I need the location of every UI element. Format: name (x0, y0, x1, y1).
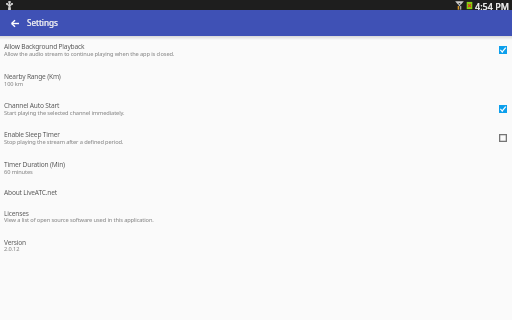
staticText: Allow Background Playback (4, 42, 85, 51)
staticText: 60 minutes (4, 168, 33, 176)
button[interactable]: Timer Duration (Min) (0, 155, 512, 183)
button[interactable]: Checked (495, 101, 511, 117)
button[interactable]: Back (7, 16, 22, 31)
staticText: Nearby Range (Km) (4, 72, 61, 81)
staticText: 2.0.12 (4, 245, 20, 253)
button[interactable]: Nearby Range (Km) (0, 67, 512, 97)
staticText: 100 km (4, 80, 23, 88)
button[interactable]: Unchecked (495, 130, 511, 146)
staticText: Version (4, 238, 26, 247)
staticText: Start playing the selected channel immed… (4, 109, 125, 117)
staticText: 4:54 PM (475, 0, 509, 10)
button[interactable]: Checked (495, 42, 511, 58)
staticText: Licenses (4, 209, 29, 218)
button[interactable]: About LiveATC.net (0, 183, 512, 205)
staticText: Stop playing the stream after a defined … (4, 138, 124, 146)
staticText: View a list of open source software used… (4, 216, 154, 224)
button[interactable]: Channel Auto Start (0, 96, 512, 125)
staticText: Channel Auto Start (4, 101, 60, 110)
staticText: Settings (27, 17, 58, 28)
staticText: About LiveATC.net (4, 188, 57, 197)
button[interactable]: Licenses (0, 204, 512, 233)
button[interactable]: Enable Sleep Timer (0, 125, 512, 154)
staticText: Timer Duration (Min) (4, 160, 65, 169)
staticText: Allow the audio stream to continue playi… (4, 50, 175, 58)
button[interactable]: Version (0, 233, 512, 268)
staticText: Enable Sleep Timer (4, 130, 60, 139)
button[interactable]: Allow Background Playback (0, 37, 512, 66)
